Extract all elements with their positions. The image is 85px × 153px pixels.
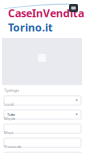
button[interactable]: Select option bbox=[4, 96, 81, 105]
button[interactable]: Select option bbox=[4, 110, 81, 119]
button[interactable]: Enter value bbox=[4, 138, 81, 147]
staticText: Torino.it bbox=[8, 20, 53, 34]
button[interactable]: CaseInVendita Torino.it home bbox=[8, 6, 84, 34]
staticText: Mq da bbox=[4, 116, 15, 121]
staticText: Locali bbox=[4, 102, 14, 107]
staticText: Mq a bbox=[4, 130, 13, 135]
staticText: CaseInVendita bbox=[8, 6, 84, 20]
staticText: Prezzo da bbox=[4, 144, 21, 149]
button[interactable]: Enter value bbox=[4, 124, 81, 133]
staticText: Tutte bbox=[7, 112, 15, 117]
staticText: Tipologia bbox=[4, 87, 19, 93]
